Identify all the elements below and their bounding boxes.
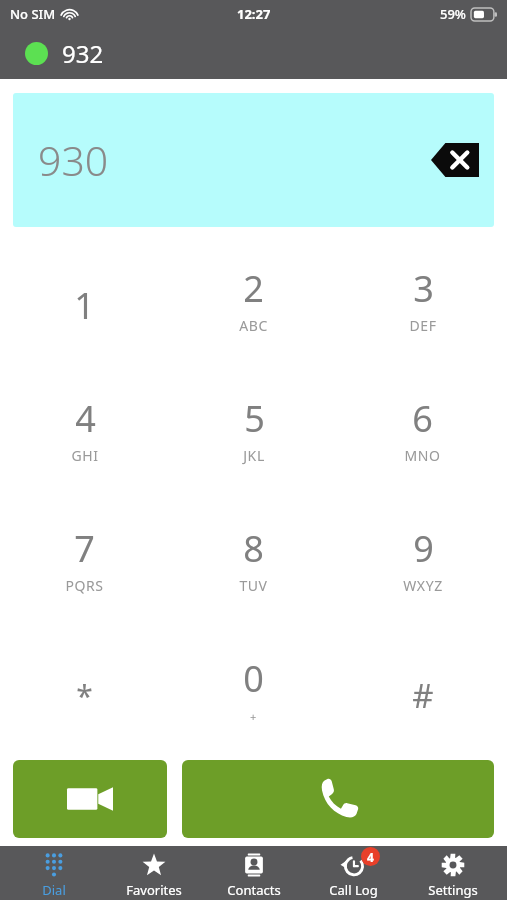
staticText: PQRS	[65, 576, 104, 595]
button[interactable]: 9	[338, 500, 507, 630]
staticText: 932	[62, 37, 104, 70]
button[interactable]: 4	[307, 846, 399, 900]
button[interactable]: #	[338, 630, 507, 760]
staticText: 6	[412, 394, 433, 443]
staticText: DEF	[409, 316, 437, 335]
staticText: 7	[74, 524, 95, 573]
staticText: *	[76, 675, 93, 716]
staticText: 4	[367, 849, 374, 865]
button[interactable]: Backspace	[428, 137, 482, 183]
button[interactable]: 930	[13, 93, 494, 227]
staticText: 5	[244, 394, 265, 443]
staticText: 0	[243, 654, 264, 703]
staticText: MNO	[404, 446, 441, 465]
button[interactable]: 932	[0, 28, 507, 79]
staticText: 8	[243, 524, 264, 573]
staticText: Settings	[428, 881, 478, 899]
button[interactable]: Video call	[13, 760, 167, 838]
staticText: Dial	[42, 881, 66, 899]
staticText: 12:27	[237, 5, 271, 23]
button[interactable]: 1	[0, 240, 169, 370]
staticText: Contacts	[227, 881, 281, 899]
staticText: 4	[75, 394, 96, 443]
button[interactable]: Settings	[407, 846, 499, 900]
staticText: #	[412, 673, 434, 718]
button[interactable]: *	[0, 630, 169, 760]
button[interactable]: 3	[338, 240, 507, 370]
button[interactable]: 4	[0, 370, 169, 500]
button[interactable]: Favorites	[108, 846, 200, 900]
staticText: +	[250, 709, 257, 724]
button[interactable]: Call	[182, 760, 494, 838]
button[interactable]: 6	[338, 370, 507, 500]
button[interactable]: 0	[169, 630, 338, 760]
button[interactable]: 5	[169, 370, 338, 500]
button[interactable]: 2	[169, 240, 338, 370]
button[interactable]: Contacts	[208, 846, 300, 900]
staticText: TUV	[239, 576, 268, 595]
staticText: Favorites	[126, 881, 182, 899]
staticText: 930	[38, 132, 109, 188]
staticText: 3	[413, 264, 434, 313]
staticText: 1	[74, 281, 95, 330]
button[interactable]: Dial	[8, 846, 100, 900]
staticText: 9	[413, 524, 434, 573]
button[interactable]: 8	[169, 500, 338, 630]
button[interactable]: 7	[0, 500, 169, 630]
staticText: No SIM	[10, 5, 56, 23]
staticText: WXYZ	[403, 576, 443, 595]
staticText: 2	[243, 264, 264, 313]
staticText: 59%	[440, 5, 466, 23]
staticText: Call Log	[329, 881, 378, 899]
staticText: ABC	[239, 316, 268, 335]
staticText: JKL	[243, 446, 265, 465]
staticText: GHI	[71, 446, 99, 465]
